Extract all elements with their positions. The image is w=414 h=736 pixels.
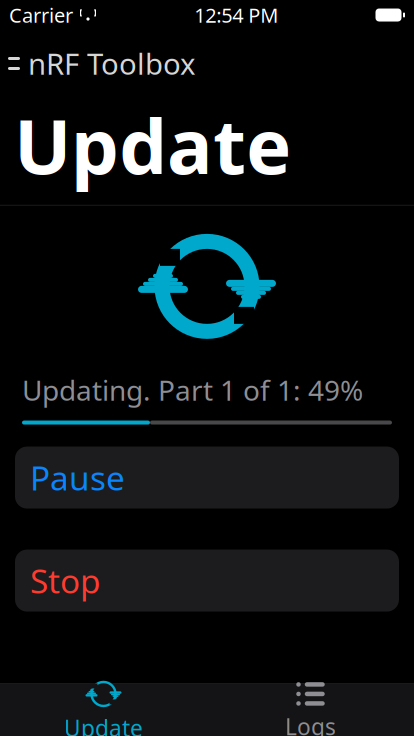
staticText: Stop xyxy=(30,558,101,603)
staticText: Logs xyxy=(285,711,336,736)
staticText: nRF Toolbox xyxy=(28,44,196,83)
button[interactable]: Logs xyxy=(207,672,414,736)
button[interactable]: Pause xyxy=(15,447,399,509)
button[interactable]: nRF Toolbox xyxy=(0,39,206,88)
staticText: Update xyxy=(14,94,291,195)
staticText: Update xyxy=(64,713,143,736)
staticText: Updating. Part 1 of 1: 49% xyxy=(22,371,363,409)
button[interactable]: Update xyxy=(0,671,207,736)
staticText: Carrier xyxy=(9,2,73,28)
button[interactable]: Stop xyxy=(15,550,399,612)
staticText: Pause xyxy=(30,455,125,500)
staticText: 12:54 PM xyxy=(194,2,278,28)
